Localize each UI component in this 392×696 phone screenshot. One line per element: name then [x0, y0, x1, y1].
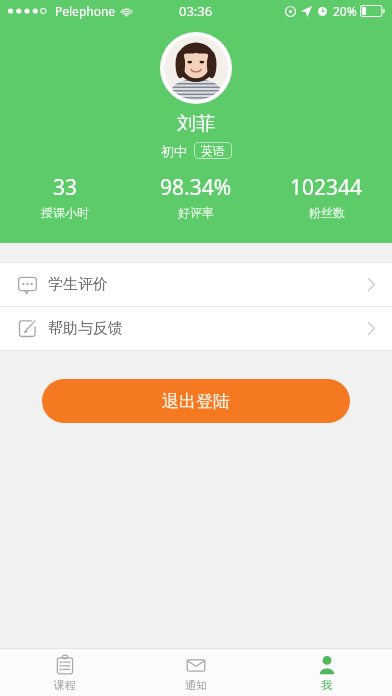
staticText: 03:36: [179, 2, 213, 20]
staticText: 20%: [333, 3, 357, 19]
button[interactable]: 学生评价: [0, 263, 392, 306]
staticText: 我: [321, 678, 332, 692]
button[interactable]: 我: [261, 649, 392, 696]
staticText: Pelephone: [55, 3, 116, 19]
staticText: 授课小时: [41, 205, 89, 220]
staticText: 退出登陆: [162, 391, 230, 412]
button[interactable]: 通知: [130, 649, 261, 696]
button[interactable]: 帮助与反馈: [0, 307, 392, 350]
staticText: 刘菲: [0, 112, 392, 136]
staticText: 粉丝数: [309, 205, 345, 220]
staticText: 通知: [185, 678, 207, 692]
button[interactable]: 课程: [0, 649, 130, 696]
staticText: 帮助与反馈: [48, 319, 123, 338]
button[interactable]: Profile photo: [160, 32, 232, 104]
staticText: 好评率: [178, 205, 214, 220]
button[interactable]: 退出登陆: [42, 379, 350, 423]
staticText: 98.34%: [160, 173, 232, 202]
staticText: 课程: [54, 678, 76, 692]
staticText: 学生评价: [48, 275, 108, 294]
button[interactable]: 98.34%: [130, 173, 261, 220]
staticText: 初中: [161, 143, 187, 159]
button[interactable]: 102344: [261, 173, 392, 220]
staticText: 33: [53, 173, 78, 202]
staticText: 英语: [201, 143, 225, 158]
button[interactable]: 33: [0, 173, 130, 220]
staticText: 102344: [290, 173, 363, 202]
